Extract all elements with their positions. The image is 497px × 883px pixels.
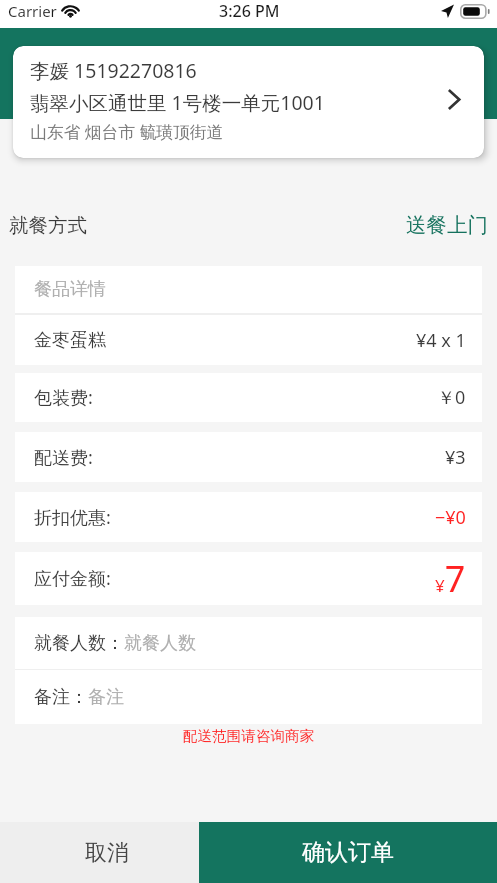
staticText: 包装费:	[34, 385, 93, 410]
staticText: 翡翠小区通世里 1号楼一单元1001	[30, 89, 325, 116]
button[interactable]: 餐品详情	[34, 266, 466, 313]
staticText: 就餐人数	[124, 632, 196, 655]
staticText: −¥0	[435, 505, 466, 530]
button[interactable]: 确认订单	[199, 822, 497, 883]
staticText: 取消	[85, 839, 129, 867]
staticText: ¥3	[445, 445, 466, 470]
button[interactable]: 送餐上门	[406, 212, 488, 238]
staticText: Carrier	[8, 1, 57, 21]
staticText: 确认订单	[302, 838, 394, 867]
button[interactable]: 包装费:	[34, 373, 466, 422]
button[interactable]: 取消	[0, 822, 199, 883]
button[interactable]: 备注：	[34, 670, 482, 724]
staticText: 备注	[88, 686, 124, 709]
button[interactable]: 就餐人数：	[34, 617, 482, 669]
button[interactable]: 李媛 15192270816	[13, 46, 484, 158]
staticText: 配送费:	[34, 445, 93, 470]
staticText: 金枣蛋糕	[34, 329, 106, 352]
button[interactable]: 金枣蛋糕	[34, 315, 466, 365]
staticText: ¥4 x 1	[416, 328, 466, 353]
staticText: 就餐方式	[9, 213, 87, 238]
staticText: 应付金额:	[34, 566, 111, 591]
staticText: 李媛 15192270816	[30, 57, 197, 84]
staticText: 配送范围请咨询商家	[0, 727, 497, 745]
staticText: 备注：	[34, 686, 88, 709]
staticText: 3:26 PM	[219, 0, 280, 22]
staticText: 折扣优惠:	[34, 505, 111, 530]
button[interactable]: 折扣优惠:	[34, 492, 466, 542]
staticText: 山东省 烟台市 毓璜顶街道	[30, 120, 224, 143]
staticText: ￥0	[437, 385, 466, 410]
staticText: ¥7	[435, 554, 466, 603]
staticText: 送餐上门	[406, 212, 488, 238]
staticText: 就餐人数：	[34, 632, 124, 655]
button[interactable]: 配送费:	[34, 432, 466, 482]
staticText: 餐品详情	[34, 278, 106, 301]
